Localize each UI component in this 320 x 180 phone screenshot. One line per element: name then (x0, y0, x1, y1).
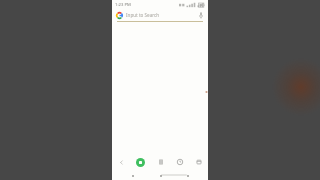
button[interactable]: Google (112, 9, 208, 21)
button[interactable]: Recents (183, 171, 192, 180)
button[interactable]: Back (128, 171, 137, 180)
button[interactable]: Home (156, 171, 165, 180)
other: Google (116, 12, 123, 19)
button[interactable]: Voice search (198, 11, 204, 20)
button[interactable]: Apps (194, 157, 204, 167)
staticText: 1:23 PM (115, 2, 131, 8)
button[interactable]: WhatsApp (135, 157, 146, 168)
button[interactable]: Documents (156, 157, 166, 167)
button[interactable]: Back (116, 157, 126, 167)
button[interactable]: Clock (175, 157, 185, 167)
staticText: Input to Search (126, 12, 198, 18)
